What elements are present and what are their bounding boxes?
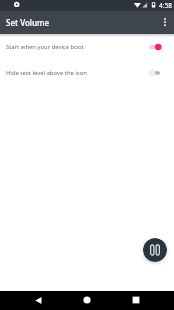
button[interactable]: Toggle on	[149, 41, 163, 53]
button[interactable]: Recent apps	[121, 290, 151, 309]
button[interactable]: Start when your device boot	[0, 34, 174, 60]
button[interactable]: Home	[72, 290, 102, 309]
button[interactable]: More options	[156, 11, 174, 34]
staticText: 4:58	[159, 1, 172, 10]
button[interactable]: Hide text level above the icon	[0, 60, 174, 86]
button[interactable]: Pause	[143, 238, 167, 262]
staticText: Start when your device boot	[6, 43, 149, 51]
button[interactable]: Toggle off	[149, 67, 163, 79]
staticText: Set Volume	[6, 17, 50, 28]
button[interactable]: Back	[23, 291, 53, 310]
staticText: Hide text level above the icon	[6, 69, 149, 77]
